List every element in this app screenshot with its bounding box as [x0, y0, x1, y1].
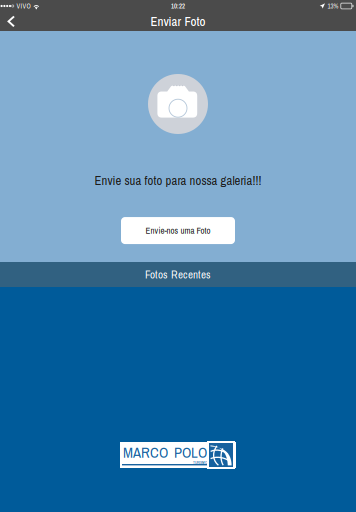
staticText: 13%	[328, 1, 339, 10]
button[interactable]: Envie-nos uma Foto	[121, 217, 235, 244]
staticText: Fotos Recentes	[145, 267, 211, 282]
staticText: 10:22	[171, 1, 185, 10]
staticText: MARCO POLO	[123, 442, 207, 462]
staticText: Envie-nos uma Foto	[145, 225, 210, 236]
button[interactable]: Back	[0, 12, 22, 31]
staticText: Enviar Foto	[150, 13, 205, 30]
staticText: TURISMO	[193, 460, 207, 465]
staticText: Envie sua foto para nossa galeria!!!	[94, 172, 261, 189]
staticText: VIVO	[16, 1, 30, 10]
